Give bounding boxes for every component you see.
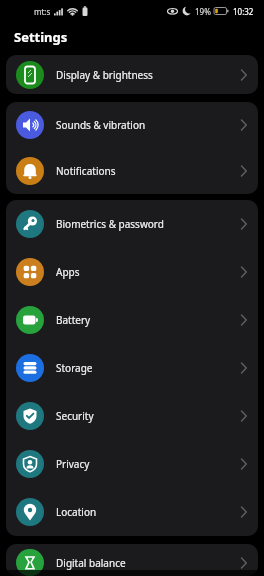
button[interactable]: Privacy [6,440,258,488]
staticText: Storage [56,361,93,375]
button[interactable]: Display & brightness [6,55,258,94]
staticText: Apps [56,265,80,279]
button[interactable]: Apps [6,248,258,296]
button[interactable]: Notifications [6,148,258,194]
button[interactable]: Battery [6,296,258,344]
staticText: Settings [14,28,68,46]
button[interactable]: Biometrics & password [6,200,258,248]
staticText: Security [56,409,94,423]
staticText: Biometrics & password [56,217,164,231]
staticText: Digital balance [56,556,126,570]
button[interactable]: Location [6,488,258,536]
button[interactable]: Security [6,392,258,440]
staticText: 19% [195,6,211,17]
staticText: Notifications [56,164,116,178]
staticText: Display & brightness [56,68,153,82]
button[interactable]: Storage [6,344,258,392]
staticText: Battery [56,313,91,327]
staticText: mt:s [34,6,51,17]
staticText: Sounds & vibration [56,118,146,132]
staticText: Privacy [56,457,90,471]
button[interactable]: Sounds & vibration [6,102,258,148]
staticText: Location [56,505,97,519]
button[interactable]: Digital balance [6,544,258,576]
staticText: 10:32 [233,6,254,17]
